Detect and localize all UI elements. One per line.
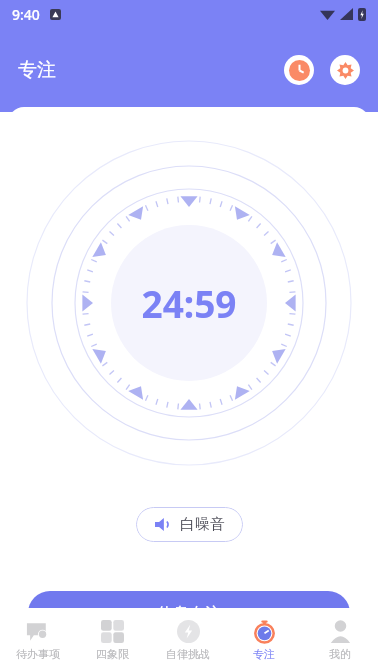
staticText: 专注	[253, 647, 275, 661]
button[interactable]: 待办事项	[0, 608, 75, 672]
staticText: 白噪音	[180, 515, 225, 534]
button[interactable]: Settings	[330, 55, 360, 85]
button[interactable]: 专注	[226, 608, 302, 672]
staticText: 专注	[18, 58, 56, 82]
staticText: 待办事项	[16, 647, 60, 661]
staticText: 24:59	[141, 278, 237, 328]
button[interactable]: 白噪音	[136, 507, 243, 542]
button[interactable]: 我的	[302, 608, 378, 672]
staticText: 四象限	[96, 647, 129, 661]
button[interactable]: 自律挑战	[150, 608, 226, 672]
staticText: 自律挑战	[166, 647, 210, 661]
staticText: 我的	[329, 647, 351, 661]
button[interactable]: History	[284, 55, 314, 85]
staticText: 休息专注	[157, 604, 221, 624]
staticText: 9:40	[12, 5, 40, 24]
button[interactable]: 休息专注	[28, 591, 350, 637]
button[interactable]: 四象限	[75, 608, 150, 672]
